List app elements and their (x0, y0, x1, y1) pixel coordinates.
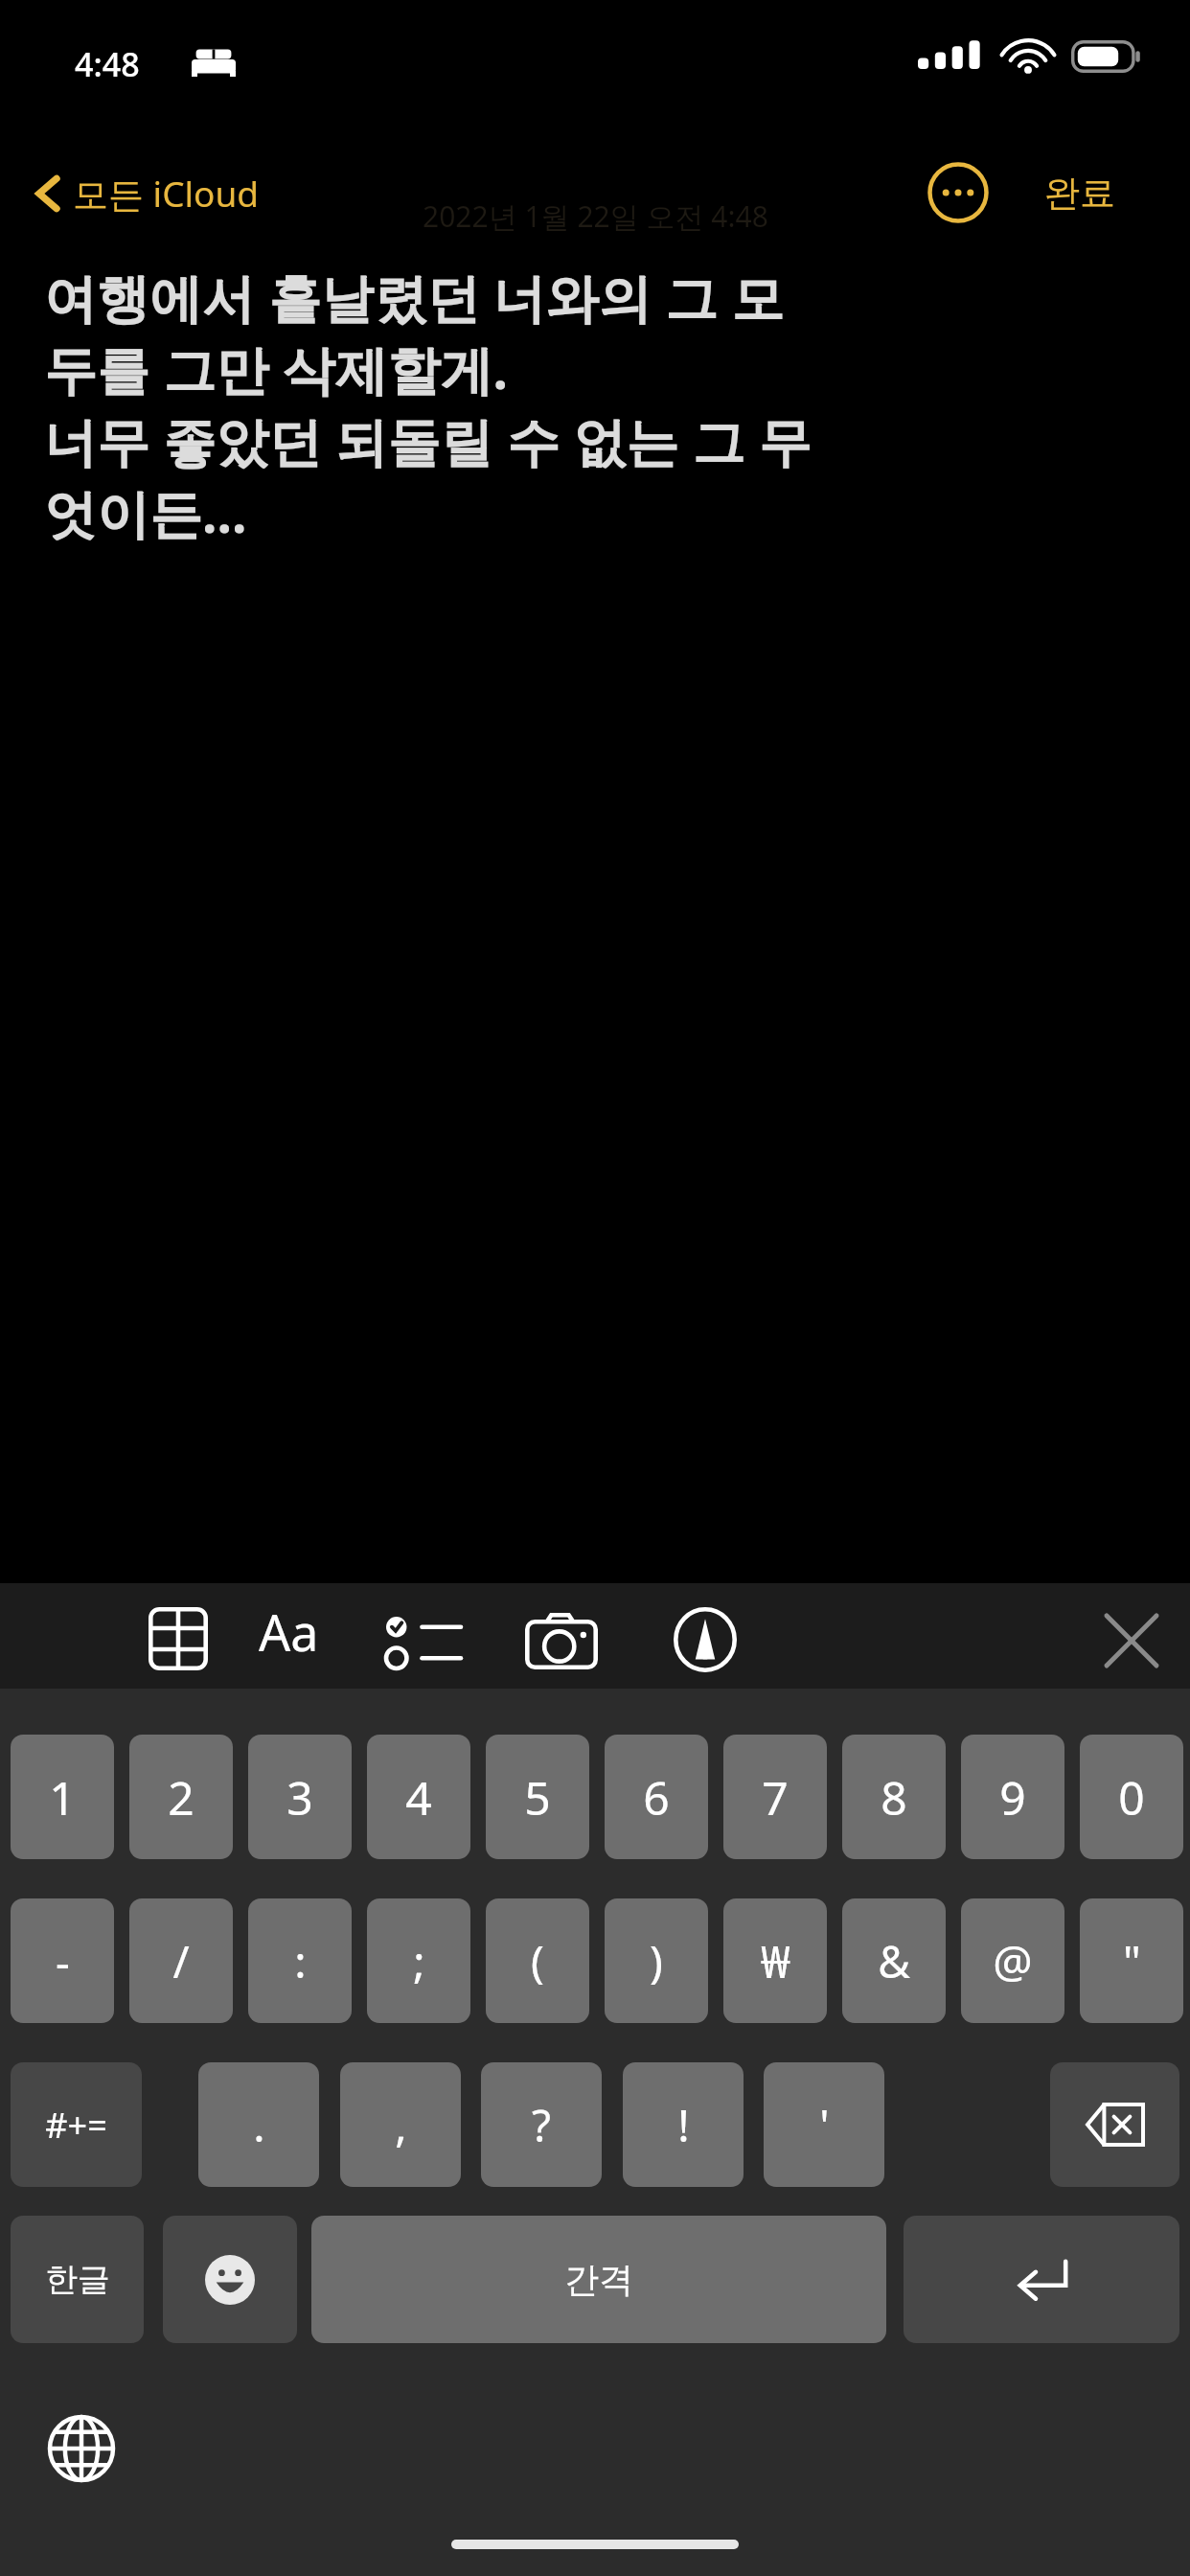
button[interactable]: Return (904, 2216, 1179, 2343)
button[interactable]: 9 (961, 1735, 1064, 1859)
staticText: & (878, 1931, 910, 1991)
button[interactable]: Markup (661, 1604, 749, 1675)
button[interactable]: ' (764, 2062, 884, 2187)
staticText: 3 (286, 1766, 313, 1828)
button[interactable]: 5 (486, 1735, 589, 1859)
staticText: 7 (762, 1766, 789, 1828)
button[interactable]: : (248, 1898, 352, 2023)
staticText: / (172, 1931, 190, 1991)
staticText: Aa (259, 1598, 319, 1666)
button[interactable]: - (11, 1898, 114, 2023)
staticText: ₩ (761, 1931, 790, 1991)
button[interactable]: 완료 (1035, 163, 1125, 223)
button[interactable]: #+= (11, 2062, 142, 2187)
button[interactable]: 0 (1080, 1735, 1183, 1859)
staticText: 여행에서 흩날렸던 너와의 그 모 (44, 261, 785, 333)
staticText: 너무 좋았던 되돌릴 수 없는 그 무 (44, 404, 812, 476)
staticText: @ (993, 1931, 1033, 1991)
button[interactable]: 6 (605, 1735, 708, 1859)
button[interactable]: / (129, 1898, 233, 2023)
button[interactable]: Switch keyboard language (40, 2407, 123, 2490)
staticText: . (253, 2095, 265, 2155)
staticText: 2 (168, 1766, 195, 1828)
button[interactable]: Emoji (163, 2216, 297, 2343)
button[interactable]: ? (481, 2062, 602, 2187)
staticText: ( (531, 1931, 544, 1991)
staticText: ) (650, 1931, 663, 1991)
button[interactable]: Hide keyboard (1098, 1607, 1165, 1674)
staticText: 간격 (564, 2258, 633, 2301)
staticText: 6 (643, 1766, 670, 1828)
button[interactable]: 7 (723, 1735, 827, 1859)
staticText: 1 (49, 1766, 76, 1828)
staticText: 2022년 1월 22일 오전 4:48 (423, 196, 768, 236)
staticText: " (1123, 1931, 1141, 1991)
button[interactable]: 4 (367, 1735, 470, 1859)
button[interactable]: @ (961, 1898, 1064, 2023)
staticText: 한글 (45, 2259, 110, 2300)
button[interactable]: More options (926, 160, 991, 225)
button[interactable]: " (1080, 1898, 1183, 2023)
staticText: 두를 그만 삭제할게. (44, 333, 509, 404)
button[interactable]: Insert photo (517, 1605, 606, 1676)
button[interactable]: ! (623, 2062, 744, 2187)
button[interactable]: Checklist (378, 1607, 467, 1678)
button[interactable]: & (842, 1898, 946, 2023)
button[interactable]: ₩ (723, 1898, 827, 2023)
button[interactable]: 모든 iCloud (29, 161, 267, 225)
staticText: ? (532, 2095, 551, 2155)
button[interactable]: 한글 (11, 2216, 144, 2343)
button[interactable]: . (198, 2062, 319, 2187)
button[interactable]: 2 (129, 1735, 233, 1859)
button[interactable]: Text formatting (244, 1596, 332, 1667)
button[interactable]: ( (486, 1898, 589, 2023)
button[interactable]: ; (367, 1898, 470, 2023)
staticText: ' (819, 2095, 830, 2155)
button[interactable]: 간격 (311, 2216, 886, 2343)
staticText: ! (677, 2095, 690, 2155)
button[interactable]: Backspace (1050, 2062, 1179, 2187)
staticText: 5 (524, 1766, 551, 1828)
button[interactable]: ) (605, 1898, 708, 2023)
staticText: 4 (405, 1766, 432, 1828)
button[interactable]: 1 (11, 1735, 114, 1859)
staticText: ; (413, 1931, 425, 1991)
staticText: , (395, 2095, 407, 2155)
staticText: 4:48 (75, 42, 140, 86)
staticText: : (294, 1931, 307, 1991)
button[interactable]: , (340, 2062, 461, 2187)
button[interactable]: 3 (248, 1735, 352, 1859)
staticText: 0 (1118, 1766, 1145, 1828)
staticText: 완료 (1044, 171, 1115, 216)
staticText: - (56, 1931, 70, 1991)
button[interactable]: Insert table (134, 1603, 222, 1674)
staticText: 엇이든... (44, 476, 247, 548)
button[interactable]: 8 (842, 1735, 946, 1859)
staticText: #+= (45, 2102, 107, 2149)
staticText: 8 (881, 1766, 907, 1828)
button[interactable]: 여행에서 흩날렸던 너와의 그 모 (44, 261, 1156, 548)
staticText: 9 (999, 1766, 1026, 1828)
staticText: 모든 iCloud (73, 169, 260, 218)
